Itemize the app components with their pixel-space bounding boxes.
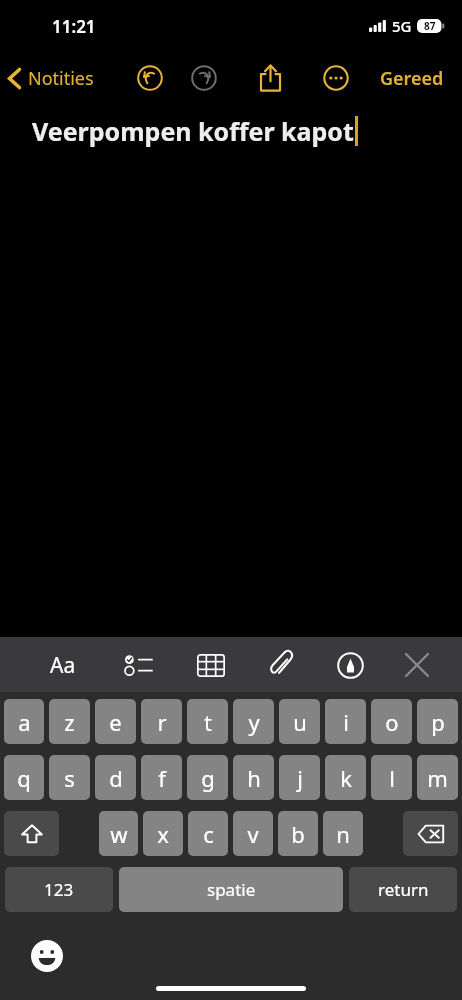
button[interactable]: Markup [327,642,373,688]
button[interactable]: Table [188,642,234,688]
button[interactable]: Shift [4,811,59,856]
button[interactable]: l [371,755,412,800]
staticText: 11:21 [52,15,96,38]
button[interactable]: j [279,755,320,800]
staticText: return [378,878,429,901]
button[interactable]: z [49,699,90,744]
staticText: i [343,707,349,737]
button[interactable]: d [95,755,136,800]
staticText: s [64,763,75,793]
staticText: b [291,819,305,849]
staticText: 87 [424,19,436,33]
staticText: p [431,707,445,737]
button[interactable]: t [187,699,228,744]
button[interactable]: e [95,699,136,744]
staticText: f [158,763,166,793]
button[interactable]: Checklist [115,642,161,688]
staticText: c [203,819,214,849]
staticText: 123 [44,878,74,901]
staticText: t [204,707,212,737]
button[interactable]: Emoji [30,939,64,973]
staticText: l [389,763,395,793]
button[interactable]: p [417,699,458,744]
button[interactable]: More options [314,56,358,100]
button[interactable]: n [323,811,363,856]
staticText: e [109,707,122,737]
staticText: Aa [50,651,76,680]
button[interactable]: f [141,755,182,800]
staticText: z [64,707,75,737]
button[interactable]: Undo [128,56,172,100]
button[interactable]: m [417,755,458,800]
staticText: spatie [207,878,256,901]
staticText: j [297,763,303,793]
button[interactable]: w [99,811,138,856]
button[interactable]: 123 [5,867,113,912]
staticText: u [293,707,307,737]
staticText: y [248,707,260,737]
staticText: a [18,707,31,737]
staticText: h [247,763,261,793]
staticText: n [336,819,350,849]
button[interactable]: x [143,811,183,856]
staticText: 5G [392,16,412,36]
staticText: r [157,707,167,737]
button[interactable]: return [349,867,457,912]
staticText: k [340,763,352,793]
button[interactable]: g [187,755,228,800]
staticText: v [247,819,259,849]
staticText: w [110,819,128,849]
button[interactable]: c [188,811,228,856]
button[interactable]: s [49,755,90,800]
button[interactable]: spatie [119,867,343,912]
button[interactable]: Redo [182,56,226,100]
button[interactable]: k [325,755,366,800]
button[interactable]: a [4,699,44,744]
button[interactable]: Backspace [403,811,458,856]
button[interactable]: u [279,699,320,744]
staticText: g [201,763,215,793]
staticText: Notities [28,66,94,91]
button[interactable]: Attach [258,642,304,688]
button[interactable]: Share [248,56,292,100]
staticText: m [427,763,448,793]
button[interactable]: o [371,699,412,744]
staticText: Veerpompen koffer kapot [32,114,354,148]
staticText: x [157,819,169,849]
button[interactable]: h [233,755,274,800]
button[interactable]: q [4,755,44,800]
button[interactable]: Aa [40,642,86,688]
button[interactable]: r [141,699,182,744]
button[interactable]: Gereed [362,58,462,99]
staticText: o [385,707,399,737]
staticText: q [17,763,31,793]
button[interactable]: Notities [0,60,102,97]
button[interactable]: Close keyboard [394,642,440,688]
staticText: d [109,763,123,793]
button[interactable]: b [278,811,318,856]
button[interactable]: v [233,811,273,856]
button[interactable]: i [325,699,366,744]
staticText: Gereed [380,66,444,91]
button[interactable]: y [233,699,274,744]
